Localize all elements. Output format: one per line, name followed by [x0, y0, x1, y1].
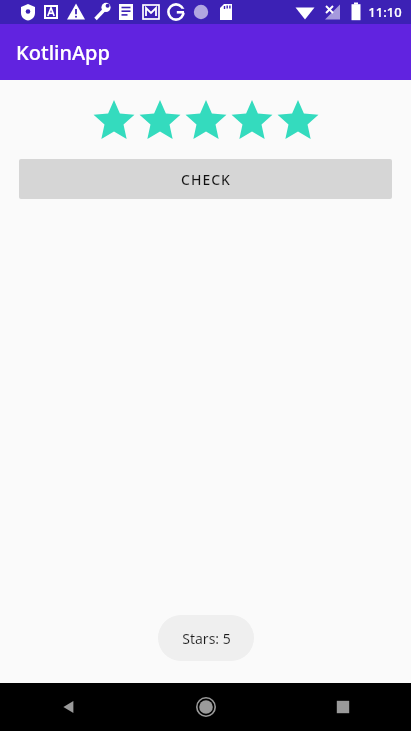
button[interactable]: Star 5 — [275, 101, 321, 141]
button[interactable]: Star 3 — [183, 101, 229, 141]
staticText: CHECK — [181, 170, 231, 189]
button[interactable]: Stars: 5 — [158, 615, 254, 661]
button[interactable]: CHECK — [19, 159, 392, 199]
button[interactable]: Back — [0, 683, 137, 731]
staticText: KotlinApp — [16, 39, 110, 66]
button[interactable]: Star 1 — [91, 101, 137, 141]
staticText: Stars: 5 — [182, 629, 231, 648]
button[interactable]: Star 2 — [137, 101, 183, 141]
button[interactable]: Star 4 — [229, 101, 275, 141]
button[interactable]: Home — [137, 683, 274, 731]
staticText: 11:10 — [368, 3, 402, 21]
button[interactable]: Recent apps — [274, 683, 411, 731]
